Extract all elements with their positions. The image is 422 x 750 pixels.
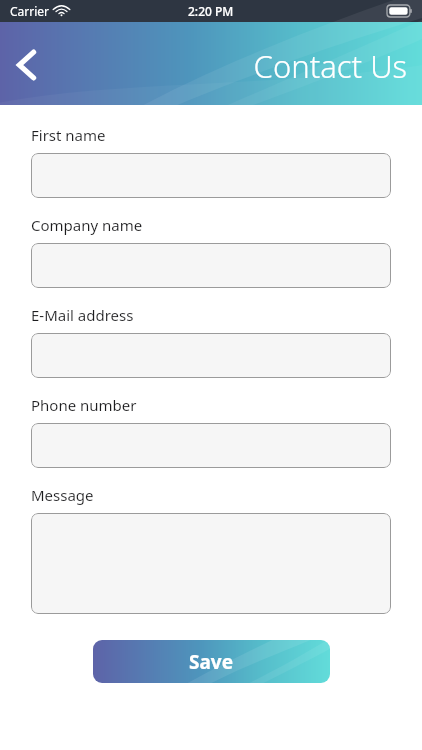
button[interactable] xyxy=(31,423,391,468)
button[interactable] xyxy=(31,243,391,288)
staticText: E-Mail address xyxy=(31,305,134,325)
staticText: Carrier xyxy=(10,3,50,19)
button[interactable] xyxy=(31,333,391,378)
staticText: Contact Us xyxy=(253,45,407,87)
staticText: First name xyxy=(31,125,106,145)
staticText: Phone number xyxy=(31,395,137,415)
staticText: Save xyxy=(189,649,234,675)
staticText: 2:20 PM xyxy=(188,3,234,19)
button[interactable] xyxy=(31,153,391,198)
button[interactable] xyxy=(31,513,391,614)
staticText: Message xyxy=(31,485,94,505)
button[interactable]: Save xyxy=(93,640,330,683)
staticText: Company name xyxy=(31,215,143,235)
button[interactable]: Back xyxy=(0,39,52,91)
